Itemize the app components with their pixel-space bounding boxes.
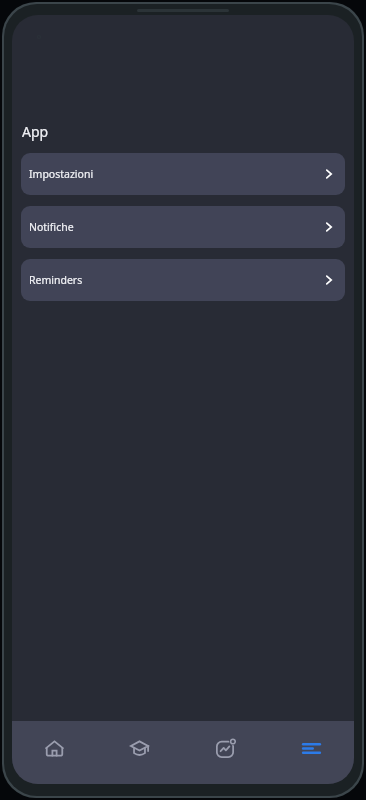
button[interactable]: Notifiche (21, 206, 345, 248)
button[interactable]: Home (12, 721, 97, 784)
button[interactable]: Impostazioni (21, 153, 345, 195)
button[interactable]: Progress (182, 721, 268, 784)
button[interactable]: Reminders (21, 259, 345, 301)
staticText: Reminders (29, 273, 321, 287)
staticText: App (22, 122, 49, 141)
button[interactable]: More (268, 721, 354, 784)
staticText: Impostazioni (29, 167, 321, 181)
staticText: Notifiche (29, 220, 321, 234)
button[interactable]: Learn (97, 721, 182, 784)
